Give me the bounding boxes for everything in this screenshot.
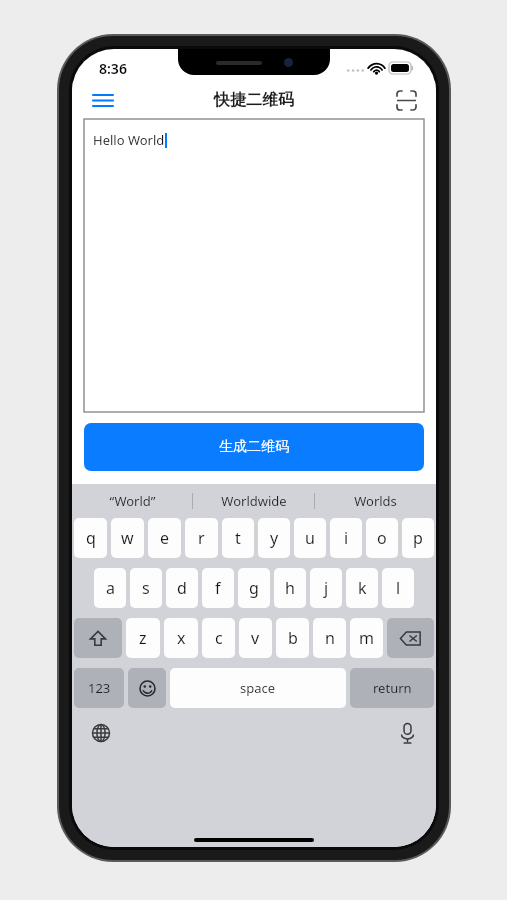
staticText: o <box>377 527 387 549</box>
button[interactable]: v <box>239 618 272 658</box>
staticText: 8:36 <box>99 59 127 78</box>
staticText: l <box>396 577 401 599</box>
button[interactable]: c <box>202 618 235 658</box>
button[interactable]: space <box>170 668 346 708</box>
staticText: s <box>142 577 150 599</box>
staticText: return <box>373 679 412 697</box>
staticText: a <box>106 577 115 599</box>
button[interactable]: p <box>402 518 434 558</box>
staticText: f <box>215 577 221 599</box>
button[interactable]: 123 <box>74 668 124 708</box>
button[interactable]: Shift <box>74 618 122 658</box>
staticText: t <box>235 527 241 549</box>
button[interactable]: r <box>185 518 218 558</box>
staticText: m <box>359 627 374 649</box>
staticText: e <box>160 527 170 549</box>
button[interactable]: Scan QR code <box>388 82 424 118</box>
button[interactable]: w <box>111 518 144 558</box>
button[interactable]: l <box>382 568 414 608</box>
button[interactable]: k <box>346 568 378 608</box>
staticText: r <box>198 527 205 549</box>
button[interactable]: Backspace <box>387 618 434 658</box>
staticText: Hello World <box>93 131 165 149</box>
staticText: z <box>139 627 147 649</box>
staticText: v <box>251 627 260 649</box>
button[interactable]: h <box>274 568 306 608</box>
staticText: d <box>177 577 187 599</box>
staticText: j <box>324 577 329 599</box>
button[interactable]: z <box>126 618 160 658</box>
button[interactable]: b <box>276 618 309 658</box>
button[interactable]: n <box>313 618 346 658</box>
staticText: h <box>285 577 295 599</box>
staticText: g <box>249 577 259 599</box>
staticText: 生成二维码 <box>219 438 289 456</box>
button[interactable]: q <box>74 518 107 558</box>
button[interactable]: a <box>94 568 126 608</box>
button[interactable]: m <box>350 618 383 658</box>
button[interactable]: g <box>238 568 270 608</box>
staticText: x <box>177 627 186 649</box>
staticText: Worldwide <box>221 492 287 510</box>
button[interactable]: i <box>330 518 362 558</box>
staticText: Worlds <box>354 492 397 510</box>
button[interactable]: Menu <box>84 81 122 119</box>
button[interactable]: Worldwide <box>193 484 314 518</box>
staticText: y <box>270 527 279 549</box>
button[interactable]: Worlds <box>315 484 436 518</box>
staticText: w <box>121 527 134 549</box>
button[interactable]: s <box>130 568 162 608</box>
staticText: 123 <box>88 679 111 697</box>
staticText: k <box>358 577 367 599</box>
button[interactable]: Emoji <box>128 668 166 708</box>
button[interactable]: x <box>164 618 198 658</box>
button[interactable]: d <box>166 568 198 608</box>
button[interactable]: Change keyboard language <box>84 716 118 750</box>
button[interactable]: “World” <box>72 484 192 518</box>
button[interactable]: j <box>310 568 342 608</box>
button[interactable]: Hello World <box>84 119 424 412</box>
button[interactable]: o <box>366 518 398 558</box>
button[interactable]: 生成二维码 <box>84 423 424 471</box>
button[interactable]: return <box>350 668 434 708</box>
button[interactable]: f <box>202 568 234 608</box>
staticText: q <box>86 527 96 549</box>
button[interactable]: Dictation <box>390 716 424 750</box>
button[interactable]: e <box>148 518 181 558</box>
staticText: space <box>240 679 276 697</box>
staticText: p <box>413 527 423 549</box>
staticText: i <box>344 527 349 549</box>
staticText: 快捷二维码 <box>214 90 294 110</box>
staticText: “World” <box>109 492 156 510</box>
button[interactable]: u <box>294 518 326 558</box>
staticText: n <box>325 627 335 649</box>
staticText: b <box>288 627 298 649</box>
staticText: u <box>305 527 315 549</box>
button[interactable]: y <box>258 518 290 558</box>
staticText: c <box>215 627 223 649</box>
button[interactable]: t <box>222 518 254 558</box>
